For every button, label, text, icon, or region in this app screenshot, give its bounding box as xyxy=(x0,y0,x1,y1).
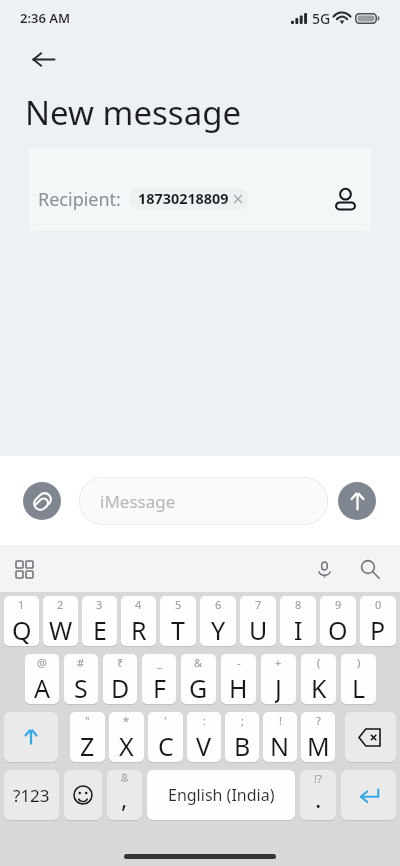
staticText: 7 xyxy=(255,597,262,612)
staticText: ! xyxy=(279,713,282,728)
staticText: 5 xyxy=(175,597,182,612)
button[interactable]: ) xyxy=(341,654,376,704)
staticText: 3 xyxy=(96,597,103,612)
staticText: 2:36 AM xyxy=(20,9,71,27)
button[interactable]: 8 xyxy=(280,596,316,646)
staticText: " xyxy=(85,713,90,728)
staticText: - xyxy=(237,655,241,670)
staticText: English (India) xyxy=(168,784,275,806)
staticText: P xyxy=(370,613,386,646)
button[interactable]: ; xyxy=(225,712,259,762)
button[interactable]: Apps xyxy=(9,554,39,584)
button[interactable]: Shift xyxy=(4,712,58,762)
button[interactable]: # xyxy=(64,654,98,704)
button[interactable]: 2 xyxy=(43,596,78,646)
staticText: ( xyxy=(317,655,321,670)
staticText: O xyxy=(328,613,348,646)
staticText: 6 xyxy=(215,597,222,612)
button[interactable]: !? xyxy=(300,770,336,820)
staticText: & xyxy=(194,655,203,670)
button[interactable]: 6 xyxy=(200,596,236,646)
button[interactable]: 4 xyxy=(121,596,156,646)
staticText: 8 xyxy=(295,597,302,612)
button[interactable]: 1 xyxy=(4,596,39,646)
staticText: !? xyxy=(314,771,322,786)
staticText: ' xyxy=(164,713,167,728)
staticText: ?123 xyxy=(13,784,50,807)
button[interactable]: Voice input xyxy=(308,553,340,585)
staticText: S xyxy=(74,671,88,704)
staticText: C xyxy=(158,729,174,762)
staticText: 18730218809 xyxy=(138,189,229,209)
staticText: _ xyxy=(157,655,162,670)
staticText: 1 xyxy=(18,597,25,612)
button[interactable]: " xyxy=(70,712,105,762)
staticText: + xyxy=(275,655,282,670)
button[interactable]: ?123 xyxy=(4,770,59,820)
staticText: W xyxy=(49,613,73,646)
button[interactable]: : xyxy=(187,712,221,762)
button[interactable]: 5 xyxy=(160,596,196,646)
button[interactable]: ' xyxy=(148,712,183,762)
staticText: V xyxy=(196,729,212,762)
staticText: R xyxy=(131,613,147,646)
button[interactable]: 18730218809 xyxy=(129,188,249,210)
staticText: ; xyxy=(241,713,244,728)
button[interactable]: 0 xyxy=(360,596,396,646)
staticText: # xyxy=(77,655,85,670)
staticText: U xyxy=(249,613,268,646)
button[interactable]: + xyxy=(261,654,296,704)
button[interactable]: ? xyxy=(301,712,335,762)
button[interactable]: 7 xyxy=(240,596,276,646)
button[interactable]: Back xyxy=(21,37,65,81)
staticText: N xyxy=(270,729,290,762)
staticText: : xyxy=(203,713,206,728)
button[interactable]: & xyxy=(181,654,216,704)
button[interactable]: ( xyxy=(301,654,336,704)
staticText: F xyxy=(153,671,166,704)
button[interactable]: iMessage xyxy=(79,477,328,525)
button[interactable]: 3 xyxy=(82,596,117,646)
button[interactable]: Enter xyxy=(341,770,396,820)
button[interactable]: ! xyxy=(263,712,297,762)
staticText: New message xyxy=(25,90,242,135)
staticText: * xyxy=(123,713,130,728)
button[interactable]: @ xyxy=(25,654,59,704)
staticText: . xyxy=(315,782,322,815)
staticText: 2 xyxy=(57,597,64,612)
button[interactable]: _ xyxy=(142,654,176,704)
staticText: A xyxy=(34,671,50,704)
button[interactable]: - xyxy=(221,654,256,704)
staticText: ? xyxy=(316,713,321,728)
button[interactable]: English (India) xyxy=(147,770,295,820)
staticText: 4 xyxy=(135,597,142,612)
staticText: T xyxy=(171,613,185,646)
staticText: ₹ xyxy=(117,655,124,670)
button[interactable]: Send xyxy=(338,482,376,520)
staticText: , xyxy=(121,782,128,815)
button[interactable]: , xyxy=(107,770,142,820)
staticText: @ xyxy=(37,655,47,670)
button[interactable]: ₹ xyxy=(103,654,137,704)
button[interactable]: Emoji xyxy=(64,770,102,820)
staticText: K xyxy=(311,671,327,704)
button[interactable]: Backspace xyxy=(345,712,396,762)
staticText: Recipient: xyxy=(38,187,121,212)
button[interactable]: Attach xyxy=(23,482,61,520)
button[interactable]: Search xyxy=(354,553,386,585)
staticText: I xyxy=(294,613,303,646)
staticText: Q xyxy=(12,613,32,646)
staticText: L xyxy=(352,671,366,704)
staticText: H xyxy=(229,671,248,704)
staticText: M xyxy=(307,729,330,762)
staticText: E xyxy=(93,613,107,646)
staticText: 9 xyxy=(335,597,342,612)
staticText: D xyxy=(111,671,130,704)
staticText: Z xyxy=(80,729,95,762)
button[interactable]: 9 xyxy=(320,596,356,646)
button[interactable]: Add contact xyxy=(329,183,361,215)
staticText: Y xyxy=(211,613,226,646)
staticText: J xyxy=(275,671,282,704)
button[interactable]: * xyxy=(109,712,144,762)
staticText: ) xyxy=(357,655,361,670)
